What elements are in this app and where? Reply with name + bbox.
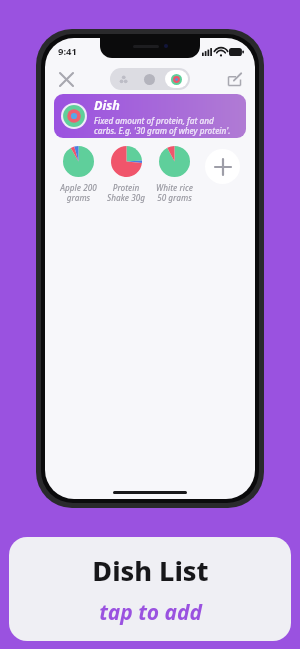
staticText: Dish [94, 97, 120, 114]
button[interactable]: Meal [136, 68, 163, 90]
staticText: Fixed amount of protein, fat and carbs. … [94, 115, 231, 136]
staticText: Apple 200 grams [60, 182, 97, 204]
staticText: 9:41 [58, 45, 77, 58]
staticText: Dish List [92, 552, 209, 589]
staticText: tap to add [99, 598, 202, 627]
staticText: White rice 50 grams [156, 182, 193, 204]
button[interactable]: Dish [54, 94, 246, 138]
button[interactable]: Apple 200 grams [54, 146, 102, 204]
staticText: Protein Shake 30g [107, 182, 145, 204]
button[interactable]: White rice 50 grams [150, 146, 198, 204]
button[interactable]: Protein Shake 30g [102, 146, 150, 204]
button[interactable]: Close [52, 65, 80, 93]
button[interactable]: Dish [165, 70, 188, 88]
button[interactable]: Add dish [205, 149, 240, 184]
button[interactable]: Edit [220, 65, 248, 93]
button[interactable]: Dish List [9, 537, 291, 641]
button[interactable]: Ingredients [110, 68, 136, 90]
